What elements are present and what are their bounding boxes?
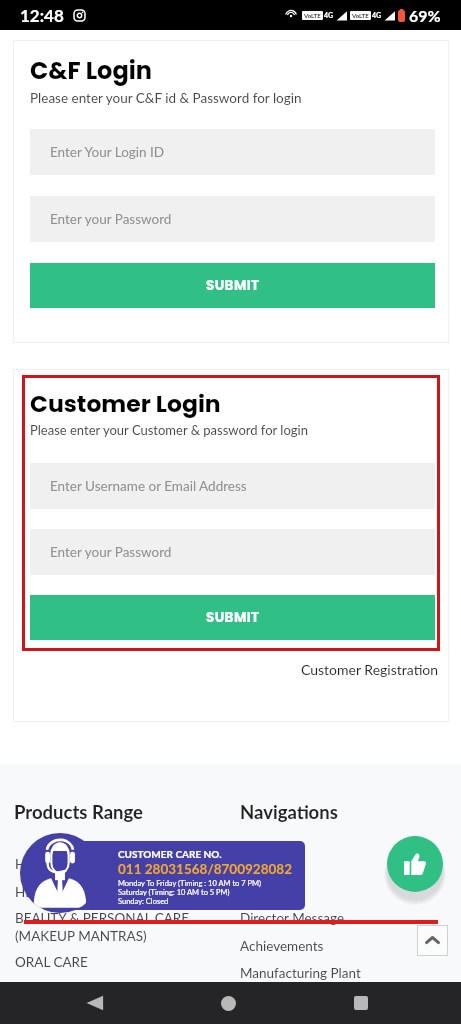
button[interactable]: Manufacturing Plant: [240, 965, 361, 981]
staticText: Achievements: [240, 938, 324, 954]
button[interactable]: SUBMIT: [30, 263, 435, 308]
staticText: BEAUTY & PERSONAL CARE: [15, 910, 190, 926]
staticText: 12:48: [20, 5, 64, 25]
button[interactable]: BEAUTY & PERSONAL CARE: [15, 910, 190, 926]
staticText: VoLTE: [304, 12, 321, 19]
staticText: ORAL CARE: [15, 954, 88, 970]
staticText: HAIR CARE: [15, 856, 85, 872]
button[interactable]: HAIR CARE: [15, 856, 85, 872]
button[interactable]: Achievements: [240, 938, 324, 954]
staticText: Please enter your C&F id & Password for …: [30, 90, 302, 106]
staticText: Sunday: Closed: [118, 897, 169, 906]
staticText: C&F Login: [30, 54, 152, 88]
button[interactable]: Enter Username or Email Address: [30, 463, 435, 509]
button[interactable]: CUSTOMER CARE NO.: [60, 841, 305, 910]
staticText: Products Range: [14, 801, 143, 823]
staticText: Enter your Password: [50, 544, 172, 560]
button[interactable]: Categories: [240, 884, 304, 900]
staticText: Manufacturing Plant: [240, 965, 361, 981]
button[interactable]: HEALTH CARE: [15, 884, 105, 900]
staticText: Enter your Password: [50, 211, 172, 227]
staticText: Categories: [240, 884, 304, 900]
staticText: Customer Login: [30, 387, 221, 420]
staticText: 4G: [372, 11, 382, 19]
button[interactable]: ORAL CARE: [15, 954, 88, 970]
staticText: Saturday (Timing: 10 AM to 5 PM): [118, 888, 230, 897]
staticText: 011 28031568/8700928082: [118, 861, 293, 877]
staticText: (MAKEUP MANTRAS): [15, 928, 147, 944]
staticText: Enter Your Login ID: [50, 144, 165, 160]
button[interactable]: (MAKEUP MANTRAS): [15, 928, 147, 944]
staticText: 4G: [324, 11, 334, 19]
button[interactable]: Back: [74, 982, 116, 1024]
staticText: CUSTOMER CARE NO.: [118, 848, 222, 860]
button[interactable]: Scroll to top: [417, 925, 448, 956]
staticText: SUBMIT: [206, 608, 260, 627]
button[interactable]: Recents: [340, 982, 382, 1024]
staticText: 69%: [409, 6, 441, 25]
button[interactable]: Customer care: [20, 833, 100, 913]
button[interactable]: SUBMIT: [30, 595, 435, 640]
staticText: Please enter your Customer & password fo…: [30, 422, 308, 438]
staticText: Director Message: [240, 910, 345, 926]
staticText: HEALTH CARE: [15, 884, 105, 900]
button[interactable]: Like: [387, 836, 443, 892]
button[interactable]: Director Message: [240, 910, 345, 926]
button[interactable]: Enter your Password: [30, 196, 435, 242]
staticText: Monday To Friday (Timing : 10 AM to 7 PM…: [118, 879, 261, 888]
staticText: Enter Username or Email Address: [50, 478, 247, 494]
staticText: SUBMIT: [206, 276, 260, 295]
staticText: Navigations: [240, 801, 338, 823]
button[interactable]: About Us: [240, 856, 296, 872]
button[interactable]: Customer Registration: [301, 661, 438, 678]
staticText: About Us: [240, 856, 296, 872]
staticText: VoLTE: [352, 12, 369, 19]
button[interactable]: Enter your Password: [30, 529, 435, 575]
button[interactable]: Enter Your Login ID: [30, 129, 435, 175]
button[interactable]: Home: [207, 982, 249, 1024]
